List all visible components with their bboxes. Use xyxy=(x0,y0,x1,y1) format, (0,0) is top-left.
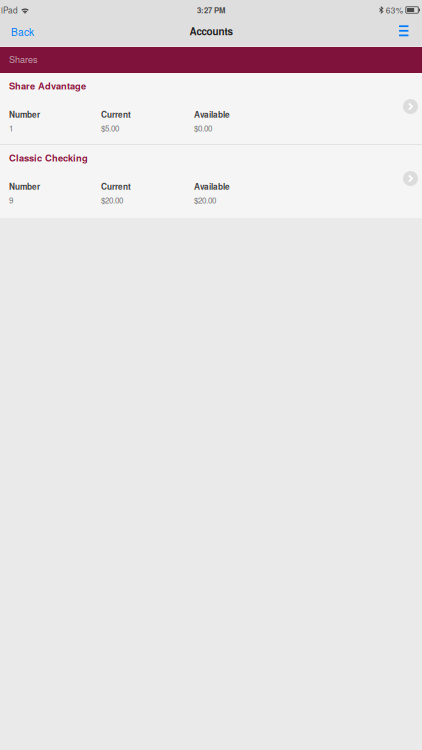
staticText: Number xyxy=(9,180,40,192)
staticText: Back xyxy=(11,24,34,39)
staticText: Classic Checking xyxy=(9,151,88,164)
staticText: Shares xyxy=(9,52,38,65)
button[interactable]: Classic Checking xyxy=(0,145,422,218)
staticText: 1 xyxy=(9,122,13,134)
staticText: Number xyxy=(9,108,40,120)
staticText: $0.00 xyxy=(194,122,212,134)
button[interactable]: Menu xyxy=(389,22,422,45)
staticText: Available xyxy=(194,108,230,120)
button[interactable]: Back xyxy=(0,19,43,48)
staticText: Current xyxy=(101,180,131,192)
staticText: 63% xyxy=(386,4,403,16)
staticText: $20.00 xyxy=(194,194,216,206)
button[interactable]: Share Advantage xyxy=(0,73,422,144)
staticText: 3:27 PM xyxy=(197,4,225,16)
staticText: $20.00 xyxy=(101,194,123,206)
staticText: Current xyxy=(101,108,131,120)
staticText: Available xyxy=(194,180,230,192)
staticText: iPad xyxy=(1,4,18,16)
staticText: $5.00 xyxy=(101,122,119,134)
staticText: Share Advantage xyxy=(9,79,86,92)
staticText: 9 xyxy=(9,194,13,206)
staticText: Accounts xyxy=(189,24,232,38)
